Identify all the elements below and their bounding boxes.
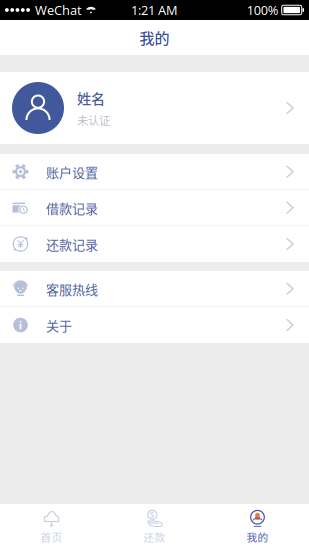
staticText: 未认证 <box>77 112 110 128</box>
staticText: 账户设置 <box>46 162 98 181</box>
staticText: 我的 <box>139 27 169 48</box>
button[interactable]: 借款记录 <box>0 190 309 226</box>
staticText: 还款 <box>143 529 165 544</box>
staticText: 还款记录 <box>46 234 98 253</box>
button[interactable]: 关于 <box>0 307 309 343</box>
button[interactable]: 账户设置 <box>0 154 309 190</box>
button[interactable]: $ <box>103 504 206 550</box>
staticText: 首页 <box>40 529 62 544</box>
staticText: 客服热线 <box>46 279 98 298</box>
staticText: 姓名 <box>77 88 105 108</box>
staticText: 关于 <box>46 315 72 334</box>
staticText: 100% <box>247 1 279 19</box>
staticText: WeChat <box>35 1 82 19</box>
button[interactable]: 我的 <box>206 504 309 550</box>
staticText: $ <box>150 509 155 520</box>
button[interactable]: 姓名 <box>0 72 309 144</box>
staticText: 我的 <box>246 529 268 544</box>
staticText: 1:21 AM <box>131 1 178 19</box>
button[interactable]: 客服热线 <box>0 271 309 307</box>
button[interactable]: 还款记录 <box>0 226 309 262</box>
staticText: 借款记录 <box>46 198 98 217</box>
button[interactable]: 首页 <box>0 504 103 550</box>
